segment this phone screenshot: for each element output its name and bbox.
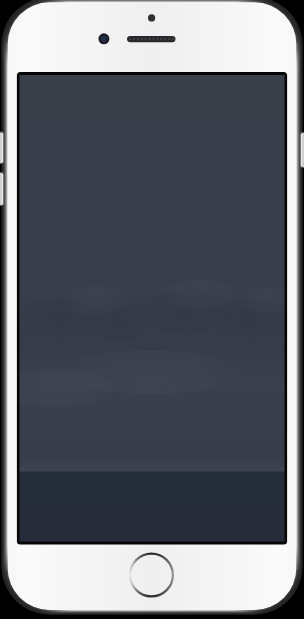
other: Phone mockup (0, 0, 304, 619)
